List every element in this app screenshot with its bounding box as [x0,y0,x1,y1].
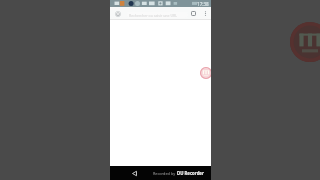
staticText: DU Recorder [177,170,204,176]
button[interactable]: Back [129,166,139,180]
staticText: Rechercher ou saisir une URL [129,13,177,18]
button[interactable]: Home [112,7,123,20]
button[interactable]: Rechercher ou saisir une URL [127,12,188,18]
button[interactable]: More options [201,7,209,20]
button[interactable]: Tabs [189,7,198,20]
staticText: 17:38 [197,1,209,7]
staticText: Recorded by [153,171,177,176]
button[interactable]: Screen recorder [200,67,211,79]
